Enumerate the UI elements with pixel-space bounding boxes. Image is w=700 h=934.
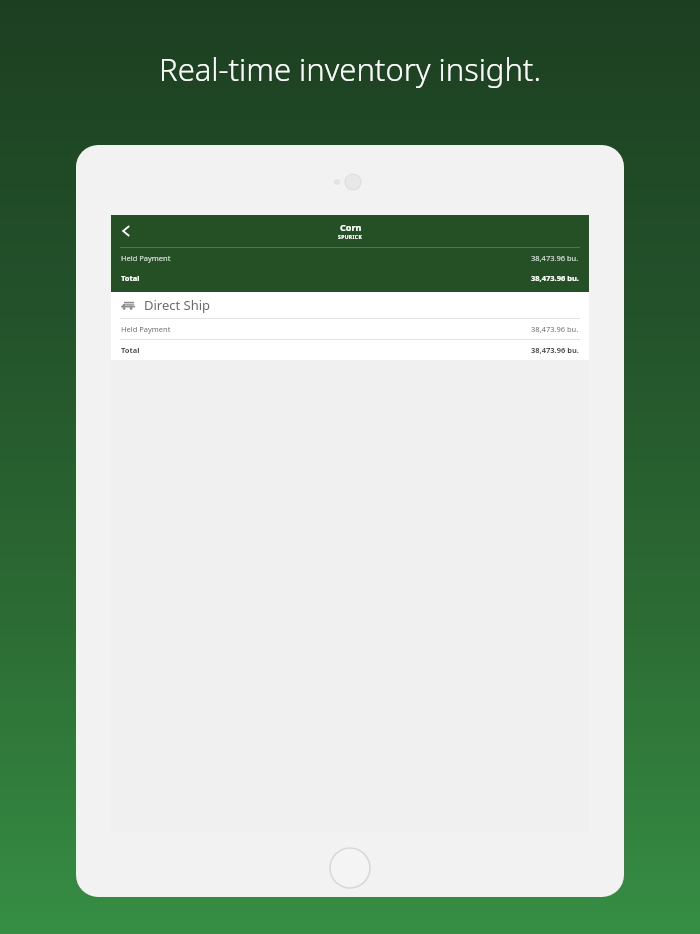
button[interactable]: Total [111, 268, 589, 288]
staticText: SPURICK [338, 234, 363, 241]
button[interactable]: Direct Ship [111, 292, 589, 360]
staticText: 38,473.96 bu. [531, 345, 579, 355]
staticText: Total [121, 345, 140, 355]
staticText: Real-time inventory insight. [159, 48, 541, 90]
staticText: Held Payment [121, 324, 171, 334]
staticText: Corn [340, 221, 362, 233]
staticText: 38,473.96 bu. [531, 324, 579, 334]
button[interactable]: Held Payment [111, 318, 589, 339]
button[interactable]: Back [111, 216, 141, 246]
staticText: Total [121, 273, 140, 283]
staticText: Direct Ship [144, 296, 211, 314]
button[interactable]: Total [111, 339, 589, 360]
staticText: 38,473.96 bu. [531, 253, 579, 263]
button[interactable]: Held Payment [111, 247, 589, 268]
staticText: 38,473.96 bu. [531, 273, 579, 283]
staticText: Held Payment [121, 253, 171, 263]
